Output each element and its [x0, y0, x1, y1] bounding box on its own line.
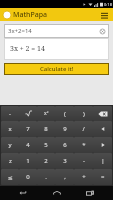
staticText: 5 — [44, 141, 48, 149]
staticText: - — [9, 110, 11, 118]
button[interactable]: 6 — [55, 137, 74, 153]
button[interactable]: + — [74, 169, 93, 185]
button[interactable]: ^ — [37, 106, 55, 121]
button[interactable]: Calculate it! — [4, 63, 109, 75]
button[interactable]: ► — [93, 137, 112, 153]
button[interactable]: - — [1, 106, 19, 121]
staticText: y — [8, 141, 12, 149]
staticText: 0 — [26, 173, 30, 181]
button[interactable]: - — [74, 153, 93, 169]
button[interactable]: √ — [19, 106, 37, 121]
button[interactable]: . — [37, 169, 55, 185]
staticText: x² — [44, 110, 49, 117]
button[interactable]: , — [55, 169, 74, 185]
button[interactable]: = — [93, 169, 112, 185]
button[interactable]: Recents — [80, 186, 100, 200]
staticText: . — [45, 173, 47, 181]
staticText: x — [8, 125, 12, 133]
button[interactable]: ◄ — [93, 121, 112, 137]
button[interactable]: Back — [13, 186, 33, 200]
staticText: + — [82, 173, 86, 181]
button[interactable]: ( — [55, 106, 74, 121]
staticText: 9 — [63, 125, 67, 133]
button[interactable]: 3x+2=14 — [4, 24, 109, 38]
button[interactable]: 1 — [19, 153, 37, 169]
button[interactable]: y — [1, 137, 19, 153]
staticText: , — [64, 173, 66, 181]
button[interactable]: 5 — [37, 137, 55, 153]
staticText: 4 — [26, 141, 30, 149]
staticText: 3x+2=14 — [8, 27, 32, 35]
button[interactable]: 3 — [55, 153, 74, 169]
button[interactable]: 9 — [55, 121, 74, 137]
button[interactable]: 2 — [37, 153, 55, 169]
staticText: 8 — [44, 125, 48, 133]
staticText: / — [82, 125, 85, 133]
button[interactable]: 4 — [19, 137, 37, 153]
staticText: 7 — [26, 125, 30, 133]
staticText: 1 — [26, 157, 30, 165]
staticText: 0:18 — [104, 2, 112, 7]
button[interactable]: Menu — [98, 9, 110, 21]
staticText: * — [82, 141, 86, 149]
button[interactable]: * — [74, 137, 93, 153]
staticText: 3 — [63, 157, 67, 165]
staticText: = — [101, 173, 105, 181]
button[interactable]: ≤ — [1, 169, 19, 185]
staticText: z — [9, 157, 12, 165]
staticText: ) — [83, 110, 85, 118]
button[interactable]: / — [74, 121, 93, 137]
staticText: 2 — [44, 157, 48, 165]
button[interactable]: ⌫ — [93, 106, 112, 121]
button[interactable]: 8 — [37, 121, 55, 137]
staticText: | — [101, 157, 105, 165]
button[interactable]: 0 — [19, 169, 37, 185]
staticText: Calculate it! — [40, 65, 74, 73]
staticText: 3x + 2 = 14 — [10, 44, 45, 54]
button[interactable]: Clear — [99, 28, 106, 35]
button[interactable]: 7 — [19, 121, 37, 137]
staticText: 6 — [63, 141, 67, 149]
staticText: ( — [64, 110, 66, 118]
staticText: ≤ — [7, 174, 13, 181]
button[interactable]: x — [1, 121, 19, 137]
button[interactable]: | — [93, 153, 112, 169]
button[interactable]: ) — [74, 106, 93, 121]
button[interactable]: z — [1, 153, 19, 169]
staticText: MathPapa — [13, 10, 48, 20]
button[interactable]: Home — [47, 186, 67, 200]
staticText: - — [83, 157, 85, 165]
